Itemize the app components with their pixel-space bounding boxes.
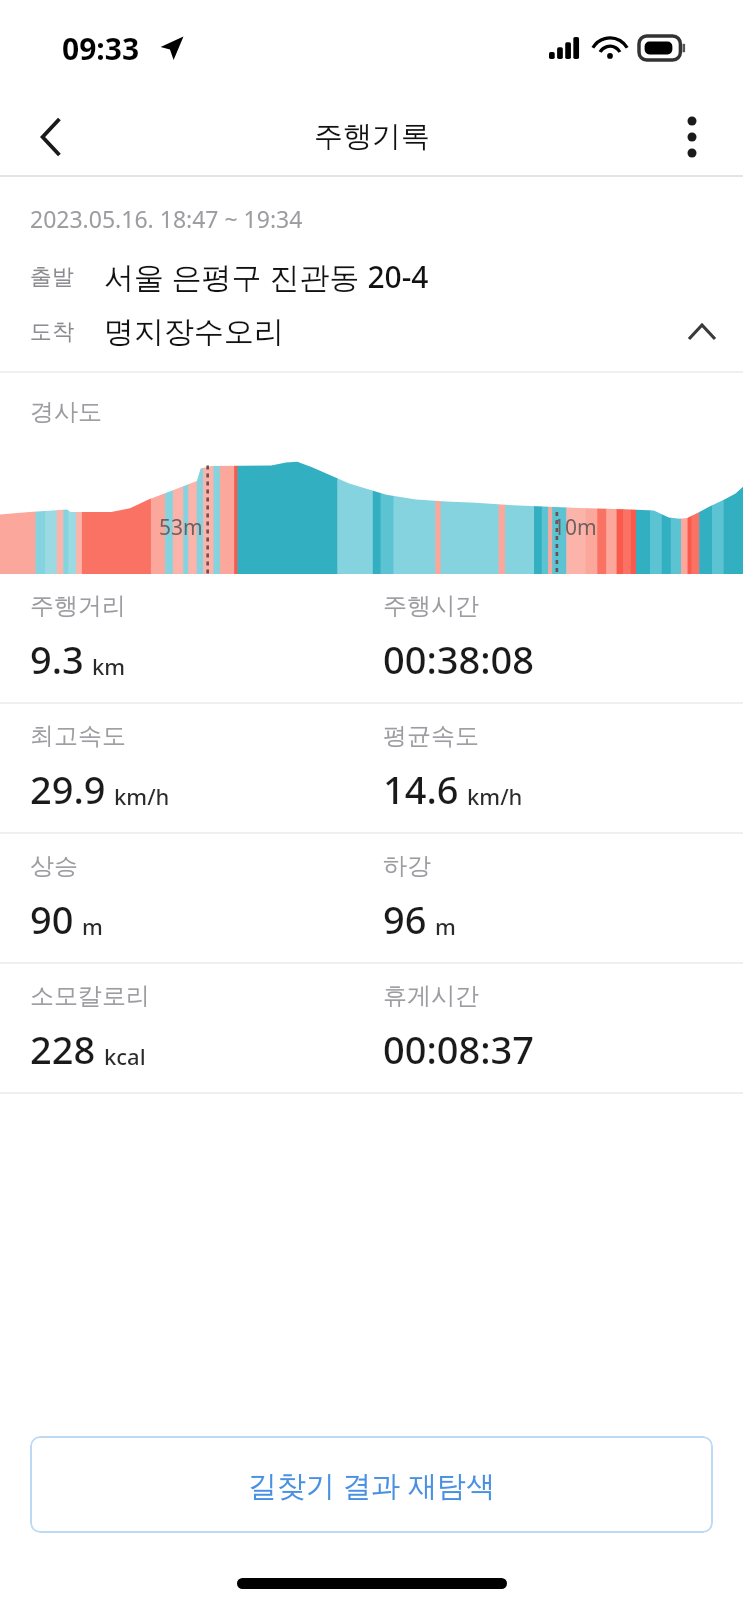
staticText: 서울 은평구 진관동 20-4 [104, 256, 429, 297]
staticText: 상승 [30, 851, 78, 881]
staticText: kcal [104, 1041, 146, 1071]
staticText: km/h [114, 781, 170, 811]
button[interactable]: Back [18, 104, 84, 170]
staticText: 경사도 [30, 397, 102, 427]
staticText: km/h [467, 781, 523, 811]
button[interactable]: More options [659, 104, 725, 170]
staticText: 주행시간 [383, 591, 479, 621]
staticText: 도착 [30, 318, 104, 346]
staticText: 소모칼로리 [30, 981, 150, 1011]
staticText: 00:38:08 [383, 633, 535, 685]
staticText: 29.9 [30, 763, 106, 815]
staticText: km [92, 651, 126, 681]
button[interactable]: 길찾기 결과 재탐색 [30, 1436, 713, 1533]
staticText: 09:33 [62, 28, 140, 69]
staticText: 출발 [30, 263, 104, 291]
staticText: 90 [30, 893, 74, 945]
staticText: 길찾기 결과 재탐색 [248, 1465, 496, 1505]
staticText: 하강 [383, 851, 431, 881]
staticText: 주행기록 [314, 118, 430, 155]
button[interactable]: 2023.05.16. 18:47 ~ 19:34 [0, 177, 743, 371]
staticText: 2023.05.16. 18:47 ~ 19:34 [30, 203, 303, 234]
staticText: 00:08:37 [383, 1023, 535, 1075]
staticText: 53m [159, 513, 203, 542]
staticText: 14.6 [383, 763, 459, 815]
staticText: 9.3 [30, 633, 84, 685]
staticText: 228 [30, 1023, 96, 1075]
staticText: 10m [553, 513, 597, 542]
staticText: 최고속도 [30, 721, 126, 751]
staticText: 96 [383, 893, 427, 945]
staticText: m [82, 911, 103, 941]
staticText: m [435, 911, 456, 941]
staticText: 휴게시간 [383, 981, 479, 1011]
staticText: 주행거리 [30, 591, 126, 621]
staticText: 명지장수오리 [104, 313, 284, 351]
staticText: 평균속도 [383, 721, 479, 751]
